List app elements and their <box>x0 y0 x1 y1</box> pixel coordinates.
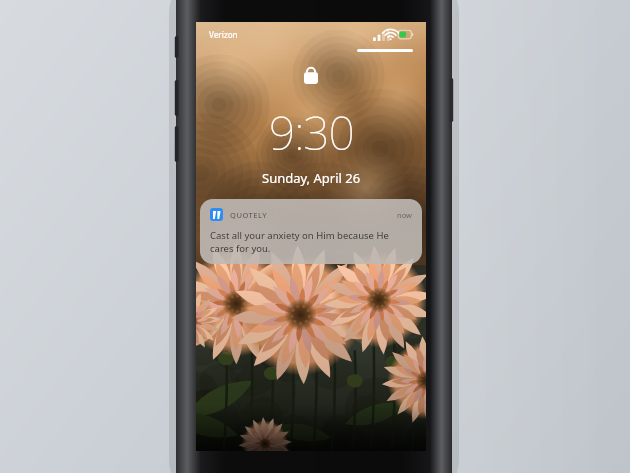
staticText: 9:30 <box>269 101 354 164</box>
button[interactable]: QUOTELY <box>200 199 422 264</box>
staticText: now <box>397 210 412 220</box>
staticText: Verizon <box>209 29 238 40</box>
staticText: QUOTELY <box>230 210 268 220</box>
staticText: Cast all your anxiety on Him because He … <box>210 229 412 255</box>
staticText: Sunday, April 26 <box>262 169 361 187</box>
